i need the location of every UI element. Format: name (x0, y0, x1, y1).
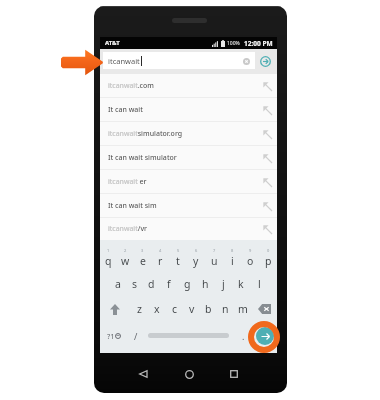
staticText: z (137, 302, 142, 316)
button[interactable]: f (160, 272, 178, 296)
button[interactable]: 0 (259, 248, 277, 272)
button[interactable]: m (234, 296, 251, 322)
button[interactable]: 8 (223, 248, 241, 272)
button[interactable]: g (178, 272, 196, 296)
staticText: 6 (195, 248, 198, 253)
button[interactable]: Shift (100, 296, 130, 322)
button[interactable]: Recent apps (222, 362, 246, 386)
staticText: m (238, 302, 248, 316)
staticText: AT&T (105, 39, 120, 47)
button[interactable]: 6 (187, 248, 205, 272)
button[interactable]: itcanwaitsimulator.org (100, 122, 277, 145)
button[interactable]: 3 (134, 248, 151, 272)
staticText: 8 (231, 248, 234, 253)
button[interactable]: n (217, 296, 234, 322)
staticText: h (202, 277, 209, 291)
button[interactable]: x (148, 296, 166, 322)
staticText: 2 (124, 248, 127, 253)
button[interactable]: ?1 (100, 322, 128, 349)
staticText: y (193, 254, 199, 268)
staticText: o (247, 254, 254, 268)
button[interactable]: 4 (151, 248, 169, 272)
button[interactable]: It can wait simulator (100, 146, 277, 169)
staticText: v (189, 302, 195, 316)
staticText: w (121, 254, 130, 268)
staticText: t (176, 254, 180, 268)
staticText: ?1 (107, 331, 115, 341)
button[interactable]: It can wait (100, 98, 277, 121)
button[interactable]: Insert suggestion (258, 220, 276, 238)
staticText: 100% (227, 40, 240, 47)
staticText: 9 (249, 248, 252, 253)
staticText: r (158, 254, 163, 268)
button[interactable]: k (232, 272, 250, 296)
button[interactable]: c (166, 296, 183, 322)
button[interactable]: b (200, 296, 217, 322)
button[interactable]: 2 (117, 248, 134, 272)
button[interactable]: 5 (169, 248, 187, 272)
staticText: a (115, 277, 121, 291)
staticText: j (222, 277, 225, 291)
staticText: n (222, 302, 229, 316)
staticText: / (134, 330, 138, 342)
staticText: e (140, 254, 146, 268)
button[interactable]: itcanwait.com (100, 74, 277, 97)
staticText: itcanwait.com (108, 81, 154, 91)
button[interactable]: l (250, 272, 268, 296)
staticText: 3 (141, 248, 144, 253)
staticText: It can wait sim (108, 201, 157, 211)
button[interactable]: 9 (241, 248, 259, 272)
staticText: c (172, 302, 178, 316)
button[interactable]: / (128, 322, 143, 349)
button[interactable]: Insert suggestion (258, 125, 276, 143)
button[interactable]: Insert suggestion (258, 197, 276, 215)
button[interactable]: It can wait sim (100, 194, 277, 217)
staticText: s (132, 277, 138, 291)
staticText: It can wait (108, 105, 143, 115)
staticText: itcanwait/vr (108, 224, 148, 234)
button[interactable]: v (183, 296, 200, 322)
staticText: itcanwait er (108, 177, 147, 187)
button[interactable]: Search (255, 49, 276, 74)
button[interactable]: itcanwait (103, 52, 255, 69)
button[interactable]: Backspace (251, 296, 277, 322)
button[interactable]: Space (143, 322, 234, 349)
staticText: 1 (107, 248, 110, 253)
button[interactable]: 1 (100, 248, 117, 272)
staticText: It can wait simulator (108, 153, 177, 163)
button[interactable]: Insert suggestion (258, 149, 276, 167)
button[interactable]: j (214, 272, 232, 296)
staticText: b (205, 302, 212, 316)
staticText: l (258, 277, 261, 291)
button[interactable]: Back (131, 362, 155, 386)
button[interactable]: Insert suggestion (258, 173, 276, 191)
button[interactable]: Clear text (239, 54, 253, 68)
button[interactable]: . (234, 322, 252, 349)
staticText: f (167, 277, 171, 291)
staticText: g (184, 277, 191, 291)
staticText: d (148, 277, 155, 291)
button[interactable]: 7 (205, 248, 223, 272)
staticText: q (105, 254, 112, 268)
staticText: 5 (177, 248, 180, 253)
button[interactable]: Insert suggestion (258, 101, 276, 119)
button[interactable]: h (196, 272, 214, 296)
button[interactable]: d (143, 272, 160, 296)
staticText: x (154, 302, 160, 316)
staticText: p (265, 254, 272, 268)
button[interactable]: s (126, 272, 143, 296)
button[interactable]: itcanwait er (100, 170, 277, 193)
button[interactable]: itcanwait/vr (100, 218, 277, 240)
staticText: 12:00 PM (244, 39, 273, 48)
staticText: u (211, 254, 218, 268)
staticText: 0 (267, 248, 270, 253)
staticText: 7 (213, 248, 216, 253)
button[interactable]: Go (252, 322, 277, 349)
staticText: itcanwaitsimulator.org (108, 129, 183, 139)
button[interactable]: Home (177, 362, 201, 386)
staticText: . (242, 330, 245, 342)
button[interactable]: a (109, 272, 126, 296)
staticText: itcanwait (108, 56, 140, 66)
button[interactable]: Insert suggestion (258, 77, 276, 95)
button[interactable]: z (130, 296, 148, 322)
